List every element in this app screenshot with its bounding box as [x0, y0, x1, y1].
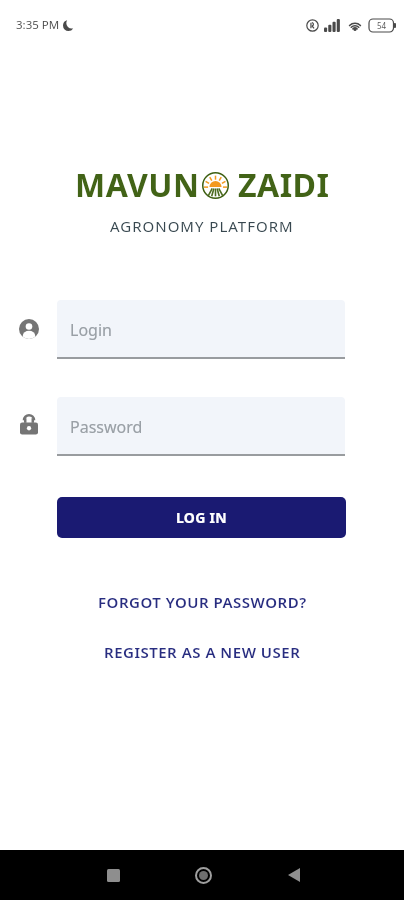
staticText: 3:35 PM — [16, 17, 60, 33]
button[interactable]: Login — [57, 300, 345, 359]
button[interactable]: Password — [57, 397, 345, 456]
staticText: MAVUN — [75, 163, 200, 207]
staticText: Login — [70, 319, 112, 341]
staticText: Password — [70, 416, 143, 438]
button[interactable]: LOG IN — [57, 497, 346, 538]
staticText: ZAIDI — [238, 163, 330, 207]
button[interactable]: REGISTER AS A NEW USER — [104, 642, 301, 662]
button[interactable] — [191, 863, 215, 887]
staticText: AGRONOMY PLATFORM — [110, 216, 294, 236]
button[interactable] — [282, 863, 306, 887]
staticText: 54 — [377, 20, 387, 31]
button[interactable] — [101, 863, 125, 887]
staticText: LOG IN — [176, 508, 228, 527]
button[interactable]: FORGOT YOUR PASSWORD? — [98, 592, 307, 612]
